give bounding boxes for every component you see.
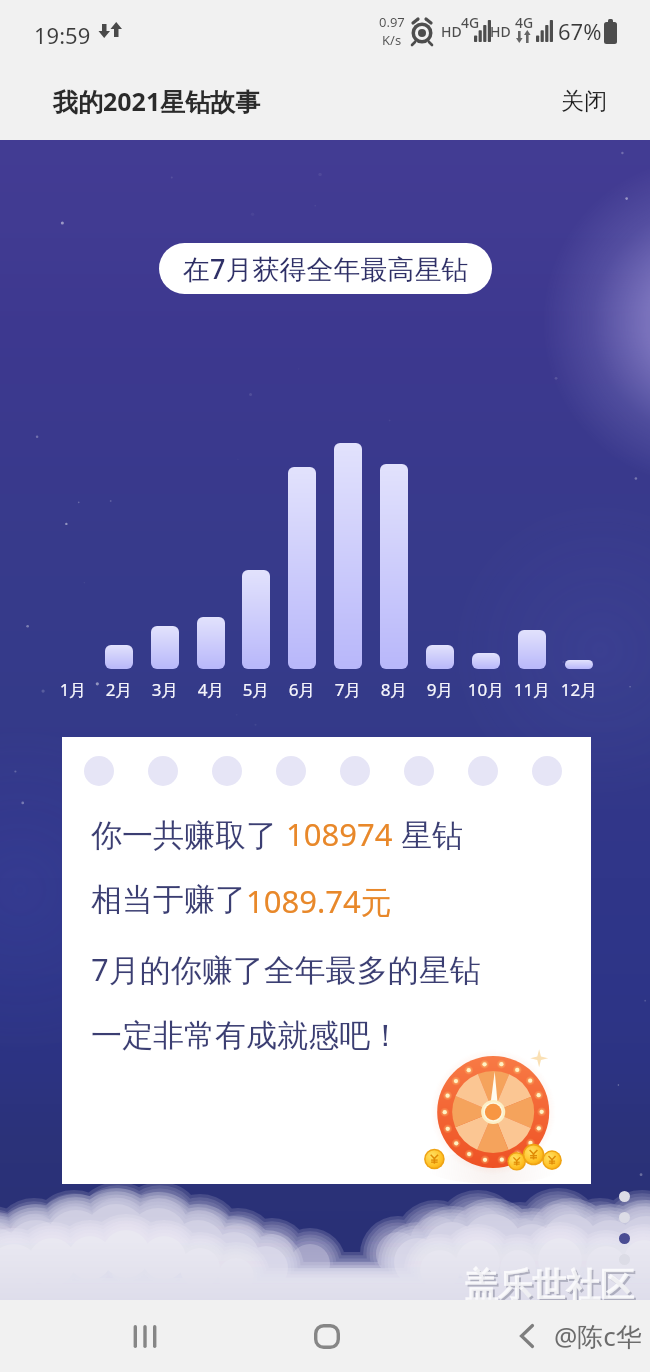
staticText: 12月 <box>549 678 609 701</box>
staticText: HD <box>441 22 462 41</box>
staticText: 67% <box>558 16 602 46</box>
staticText: 4G <box>461 13 480 32</box>
button[interactable]: 关闭 <box>539 71 650 132</box>
staticText: 19:59 <box>34 20 91 50</box>
staticText: 关闭 <box>561 87 607 116</box>
button[interactable]: Home <box>292 1300 362 1372</box>
staticText: 1089.74元 <box>246 880 392 922</box>
staticText: 7月的你赚了全年最多的星钻 <box>91 948 481 990</box>
staticText: 10月 <box>456 678 516 701</box>
staticText: 盖乐世社区 <box>466 1266 636 1309</box>
staticText: @陈c华 <box>554 1318 642 1354</box>
staticText: 11月 <box>502 678 562 701</box>
staticText: 0.97 <box>379 13 405 31</box>
staticText: HD <box>490 22 511 41</box>
staticText: 108974 <box>286 813 393 855</box>
staticText: 6月 <box>272 678 332 701</box>
staticText: 星钻 <box>393 813 464 855</box>
staticText: K/s <box>382 31 402 49</box>
staticText: 9月 <box>410 678 470 701</box>
button[interactable]: Recent apps <box>110 1300 180 1372</box>
staticText: 2月 <box>89 678 149 701</box>
staticText: 一定非常有成就感吧！ <box>91 1016 401 1055</box>
staticText: 1月 <box>43 678 103 701</box>
button[interactable]: @陈c华 <box>520 1318 642 1354</box>
staticText: 在7月获得全年最高星钻 <box>183 250 469 287</box>
staticText: 5月 <box>226 678 286 701</box>
staticText: 你一共赚取了 <box>91 813 286 855</box>
staticText: 相当于赚了 <box>91 880 246 919</box>
staticText: 8月 <box>364 678 424 701</box>
staticText: 我的2021星钻故事 <box>53 84 261 118</box>
staticText: 3月 <box>135 678 195 701</box>
staticText: 4月 <box>181 678 241 701</box>
staticText: 7月 <box>318 678 378 701</box>
staticText: 4G <box>515 13 534 32</box>
staticText: 盖乐世社区 <box>464 1264 634 1307</box>
